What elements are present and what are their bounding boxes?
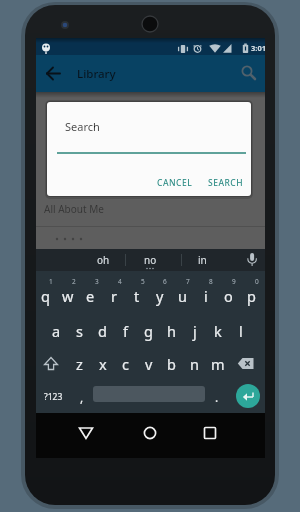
- button[interactable]: [198, 421, 222, 445]
- button[interactable]: l: [229, 314, 252, 347]
- staticText: s: [76, 321, 83, 341]
- button[interactable]: r: [102, 279, 125, 312]
- staticText: 0: [255, 277, 259, 286]
- staticText: v: [145, 354, 153, 374]
- staticText: m: [211, 354, 225, 374]
- staticText: in: [198, 253, 207, 267]
- button[interactable]: ,: [70, 380, 93, 413]
- staticText: e: [86, 286, 95, 306]
- button[interactable]: v: [137, 347, 160, 380]
- button[interactable]: CANCEL: [145, 172, 205, 194]
- staticText: h: [167, 321, 176, 341]
- staticText: b: [167, 354, 176, 374]
- staticText: n: [190, 354, 199, 374]
- staticText: 8: [209, 277, 213, 286]
- staticText: c: [122, 354, 129, 374]
- button[interactable]: g: [137, 314, 160, 347]
- staticText: 4: [118, 277, 122, 286]
- button[interactable]: o: [217, 279, 240, 312]
- button[interactable]: ?123: [36, 380, 70, 413]
- button[interactable]: h: [160, 314, 183, 347]
- staticText: y: [156, 286, 164, 306]
- button[interactable]: w: [56, 279, 79, 312]
- button[interactable]: e: [79, 279, 102, 312]
- button[interactable]: z: [68, 347, 91, 380]
- staticText: no: [144, 253, 157, 267]
- staticText: u: [178, 286, 187, 306]
- button[interactable]: oh: [73, 249, 133, 271]
- staticText: 9: [232, 277, 236, 286]
- staticText: CANCEL: [157, 177, 193, 189]
- button[interactable]: f: [114, 314, 137, 347]
- button[interactable]: t: [125, 279, 148, 312]
- staticText: i: [204, 286, 208, 306]
- staticText: q: [41, 286, 50, 306]
- button[interactable]: d: [91, 314, 114, 347]
- staticText: l: [239, 321, 243, 341]
- staticText: r: [111, 286, 117, 306]
- button[interactable]: [138, 421, 162, 445]
- button[interactable]: k: [206, 314, 229, 347]
- button[interactable]: [41, 61, 65, 85]
- staticText: p: [247, 286, 256, 306]
- button[interactable]: [236, 384, 260, 408]
- staticText: z: [76, 354, 83, 374]
- staticText: ,: [80, 389, 84, 405]
- staticText: SEARCH: [208, 177, 244, 189]
- button[interactable]: x: [91, 347, 114, 380]
- button[interactable]: [229, 347, 263, 380]
- button[interactable]: c: [114, 347, 137, 380]
- button[interactable]: q: [34, 279, 56, 312]
- staticText: j: [193, 321, 197, 341]
- button[interactable]: s: [68, 314, 91, 347]
- staticText: Search: [65, 119, 100, 134]
- staticText: w: [62, 286, 74, 306]
- staticText: a: [52, 321, 61, 341]
- staticText: 6: [163, 277, 167, 286]
- staticText: 2: [72, 277, 76, 286]
- button[interactable]: [34, 347, 68, 380]
- staticText: 3: [95, 277, 99, 286]
- staticText: All About Me: [44, 202, 104, 216]
- staticText: d: [98, 321, 107, 341]
- button[interactable]: SEARCH: [196, 172, 251, 194]
- staticText: x: [99, 354, 107, 374]
- button[interactable]: .: [205, 380, 228, 413]
- button[interactable]: n: [183, 347, 206, 380]
- staticText: oh: [97, 253, 110, 267]
- staticText: o: [224, 286, 233, 306]
- staticText: 1: [49, 277, 53, 286]
- staticText: ?123: [44, 391, 63, 403]
- staticText: g: [144, 321, 153, 341]
- staticText: 5: [141, 277, 145, 286]
- staticText: Library: [77, 66, 116, 82]
- staticText: .: [215, 389, 219, 405]
- button[interactable]: in: [172, 249, 232, 271]
- button[interactable]: b: [160, 347, 183, 380]
- staticText: k: [214, 321, 222, 341]
- button[interactable]: j: [183, 314, 206, 347]
- button[interactable]: i: [194, 279, 217, 312]
- button[interactable]: p: [240, 279, 263, 312]
- staticText: t: [134, 286, 140, 306]
- button[interactable]: [236, 60, 262, 86]
- button[interactable]: All About Me: [36, 198, 265, 226]
- button[interactable]: [74, 421, 98, 445]
- button[interactable]: m: [206, 347, 229, 380]
- button[interactable]: y: [148, 279, 171, 312]
- button[interactable]: a: [45, 314, 68, 347]
- staticText: 3:01: [251, 43, 266, 53]
- button[interactable]: u: [171, 279, 194, 312]
- staticText: 7: [186, 277, 190, 286]
- button[interactable]: no: [120, 249, 180, 271]
- staticText: f: [123, 321, 128, 341]
